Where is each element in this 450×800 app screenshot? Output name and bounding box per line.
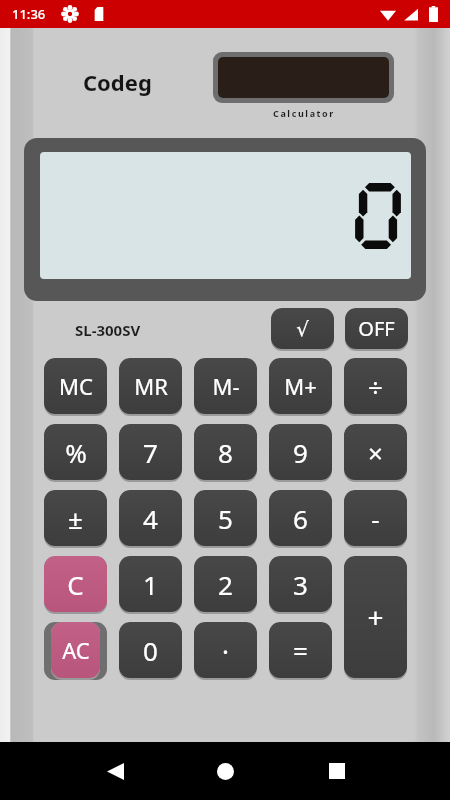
button[interactable]: 0 xyxy=(119,622,182,678)
button[interactable]: 5 xyxy=(194,490,257,546)
staticText: 6 xyxy=(293,501,308,536)
button[interactable]: Home xyxy=(208,754,242,788)
button[interactable]: 1 xyxy=(119,556,182,612)
button[interactable]: 4 xyxy=(119,490,182,546)
button[interactable]: % xyxy=(44,424,107,480)
staticText: 4 xyxy=(143,501,158,536)
staticText: C xyxy=(67,567,84,602)
button[interactable]: M- xyxy=(194,358,257,414)
staticText: 2 xyxy=(218,567,233,602)
button[interactable]: × xyxy=(344,424,407,480)
staticText: 7 xyxy=(143,435,158,470)
button[interactable]: 3 xyxy=(269,556,332,612)
staticText: = xyxy=(293,633,308,668)
button[interactable]: 2 xyxy=(194,556,257,612)
button[interactable]: MR xyxy=(119,358,182,414)
button[interactable]: 7 xyxy=(119,424,182,480)
staticText: % xyxy=(65,435,87,470)
staticText: 9 xyxy=(293,435,308,470)
staticText: M- xyxy=(212,371,240,401)
button[interactable]: = xyxy=(269,622,332,678)
staticText: + xyxy=(367,598,384,636)
button[interactable]: Back xyxy=(98,754,132,788)
button[interactable]: OFF xyxy=(345,308,408,349)
staticText: × xyxy=(368,435,383,470)
staticText: ÷ xyxy=(368,369,383,404)
staticText: 0 xyxy=(143,633,158,668)
staticText: - xyxy=(371,501,380,536)
staticText: 8 xyxy=(218,435,233,470)
staticText: Calculator xyxy=(273,107,335,119)
staticText: M+ xyxy=(284,371,317,401)
button[interactable]: + xyxy=(344,556,407,678)
button[interactable]: - xyxy=(344,490,407,546)
staticText: 1 xyxy=(143,567,158,602)
button[interactable]: 9 xyxy=(269,424,332,480)
staticText: 3 xyxy=(293,567,308,602)
button[interactable]: 6 xyxy=(269,490,332,546)
staticText: MC xyxy=(59,371,93,401)
button[interactable]: MC xyxy=(44,358,107,414)
staticText: AC xyxy=(62,635,90,665)
button[interactable]: √ xyxy=(271,308,334,349)
staticText: · xyxy=(222,633,229,668)
staticText: SL-300SV xyxy=(75,320,141,340)
button[interactable]: · xyxy=(194,622,257,678)
staticText: Codegres xyxy=(83,67,155,97)
button[interactable]: M+ xyxy=(269,358,332,414)
staticText: √ xyxy=(296,317,309,340)
staticText: 11:36 xyxy=(12,5,46,23)
staticText: OFF xyxy=(358,315,395,342)
staticText: 5 xyxy=(218,501,233,536)
button[interactable]: C xyxy=(44,556,107,612)
button[interactable]: Recent apps xyxy=(320,754,354,788)
staticText: ± xyxy=(68,501,83,536)
button[interactable]: AC xyxy=(51,622,100,678)
button[interactable]: ÷ xyxy=(344,358,407,414)
button[interactable]: 8 xyxy=(194,424,257,480)
staticText: MR xyxy=(134,371,168,401)
button[interactable]: ± xyxy=(44,490,107,546)
